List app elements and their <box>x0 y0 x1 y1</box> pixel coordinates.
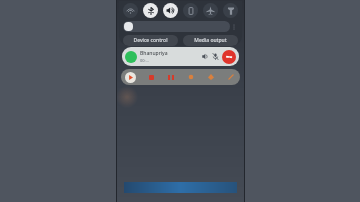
button[interactable]: More options <box>230 21 238 32</box>
button[interactable]: Device control <box>123 35 178 46</box>
button[interactable]: End call <box>222 50 236 64</box>
button[interactable]: Bluetooth <box>143 3 158 18</box>
button[interactable]: Media output <box>183 35 238 46</box>
button[interactable]: Airplane mode <box>203 3 218 18</box>
staticText: Media output <box>194 37 227 44</box>
button[interactable]: Stop <box>146 72 156 82</box>
button[interactable]: Wi-Fi <box>123 3 138 18</box>
button[interactable]: Speaker <box>199 51 210 62</box>
staticText: Bhanupriya <box>140 50 168 57</box>
button[interactable]: Mute <box>210 51 221 62</box>
button[interactable]: Bhanupriya <box>122 47 239 66</box>
button[interactable]: Device <box>183 3 198 18</box>
button[interactable]: Pen <box>226 72 236 82</box>
button[interactable]: Cast <box>163 3 178 18</box>
staticText: 00:... <box>140 58 149 63</box>
button[interactable]: Pause <box>166 72 176 82</box>
button[interactable] <box>123 21 230 32</box>
button[interactable]: Marker <box>206 72 216 82</box>
button[interactable]: Flashlight <box>223 3 238 18</box>
staticText: Device control <box>133 37 168 44</box>
button[interactable]: Record <box>125 72 136 83</box>
button[interactable]: Brush <box>186 72 196 82</box>
